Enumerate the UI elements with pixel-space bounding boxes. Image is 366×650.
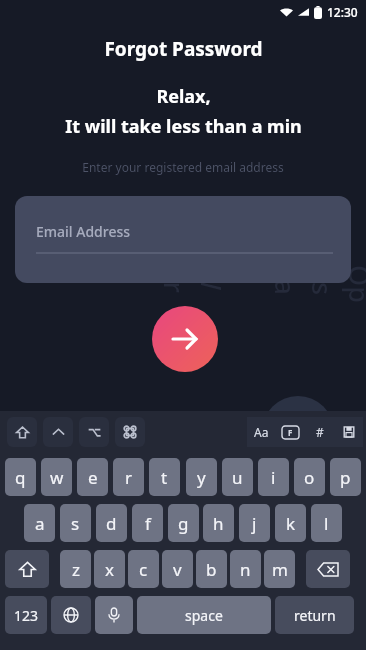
button[interactable]: Modifier key bbox=[7, 417, 37, 447]
staticText: z bbox=[72, 558, 80, 581]
staticText: Relax, bbox=[156, 84, 211, 109]
button[interactable]: e bbox=[77, 458, 108, 496]
button[interactable]: s bbox=[60, 504, 91, 542]
staticText: v bbox=[173, 558, 182, 581]
staticText: m bbox=[272, 558, 288, 581]
button[interactable]: Submit bbox=[152, 306, 218, 372]
staticText: d bbox=[106, 512, 117, 535]
staticText: It will take less than a min bbox=[65, 114, 302, 139]
button[interactable]: y bbox=[186, 458, 217, 496]
staticText: q bbox=[15, 466, 26, 489]
button[interactable]: j bbox=[239, 504, 270, 542]
staticText: return bbox=[294, 606, 336, 625]
button[interactable]: Format bbox=[334, 417, 363, 447]
staticText: Aa bbox=[254, 424, 269, 440]
staticText: Forgot Password bbox=[104, 36, 263, 62]
button[interactable]: g bbox=[168, 504, 199, 542]
button[interactable]: return bbox=[275, 596, 354, 634]
button[interactable]: n bbox=[230, 550, 261, 588]
staticText: g bbox=[178, 512, 189, 535]
button[interactable]: a bbox=[24, 504, 55, 542]
button[interactable]: c bbox=[128, 550, 159, 588]
staticText: k bbox=[286, 512, 296, 535]
button[interactable]: space bbox=[137, 596, 271, 634]
staticText: a bbox=[35, 512, 45, 535]
staticText: Email Address bbox=[36, 222, 131, 241]
staticText: o bbox=[304, 466, 315, 489]
button[interactable]: v bbox=[162, 550, 193, 588]
button[interactable]: Format bbox=[305, 417, 334, 447]
staticText: j bbox=[252, 512, 257, 535]
staticText: e bbox=[88, 466, 98, 489]
button[interactable]: q bbox=[5, 458, 36, 496]
button[interactable]: Format bbox=[247, 417, 276, 447]
button[interactable]: Backspace bbox=[306, 550, 350, 588]
staticText: f bbox=[145, 512, 151, 535]
staticText: n bbox=[240, 558, 251, 581]
button[interactable]: Email Address bbox=[15, 196, 351, 283]
staticText: w bbox=[50, 466, 64, 489]
staticText: l bbox=[324, 512, 329, 535]
button[interactable]: o bbox=[294, 458, 325, 496]
staticText: r bbox=[125, 466, 133, 489]
button[interactable]: l bbox=[311, 504, 342, 542]
button[interactable]: d bbox=[96, 504, 127, 542]
staticText: p bbox=[340, 466, 351, 489]
button[interactable]: r bbox=[113, 458, 144, 496]
staticText: s bbox=[71, 512, 80, 535]
button[interactable]: Shift bbox=[5, 550, 49, 588]
staticText: 12:30 bbox=[327, 4, 358, 20]
staticText: x bbox=[105, 558, 114, 581]
button[interactable]: Voice input bbox=[95, 596, 133, 634]
staticText: b bbox=[206, 558, 217, 581]
button[interactable]: x bbox=[94, 550, 125, 588]
staticText: 123 bbox=[14, 606, 39, 625]
staticText: i bbox=[271, 466, 276, 489]
button[interactable]: t bbox=[149, 458, 180, 496]
button[interactable]: Modifier key bbox=[43, 417, 73, 447]
button[interactable]: Modifier key bbox=[115, 417, 145, 447]
staticText: # bbox=[316, 424, 324, 440]
staticText: F bbox=[288, 427, 293, 438]
button[interactable]: Numbers bbox=[5, 596, 47, 634]
button[interactable]: w bbox=[41, 458, 72, 496]
button[interactable]: Language bbox=[51, 596, 91, 634]
button[interactable]: u bbox=[222, 458, 253, 496]
staticText: Enter your registered email address bbox=[82, 159, 284, 175]
button[interactable]: z bbox=[60, 550, 91, 588]
button[interactable]: b bbox=[196, 550, 227, 588]
button[interactable]: f bbox=[132, 504, 163, 542]
button[interactable]: Modifier key bbox=[79, 417, 109, 447]
staticText: c bbox=[139, 558, 148, 581]
button[interactable]: p bbox=[330, 458, 361, 496]
staticText: u bbox=[232, 466, 243, 489]
staticText: t bbox=[161, 466, 168, 489]
staticText: Opus LabWorks bbox=[158, 265, 366, 305]
staticText: h bbox=[213, 512, 224, 535]
button[interactable]: Format bbox=[276, 417, 305, 447]
staticText: space bbox=[185, 606, 223, 625]
button[interactable]: k bbox=[275, 504, 306, 542]
button[interactable]: m bbox=[264, 550, 295, 588]
button[interactable]: i bbox=[258, 458, 289, 496]
button[interactable]: h bbox=[203, 504, 234, 542]
staticText: y bbox=[197, 466, 206, 489]
